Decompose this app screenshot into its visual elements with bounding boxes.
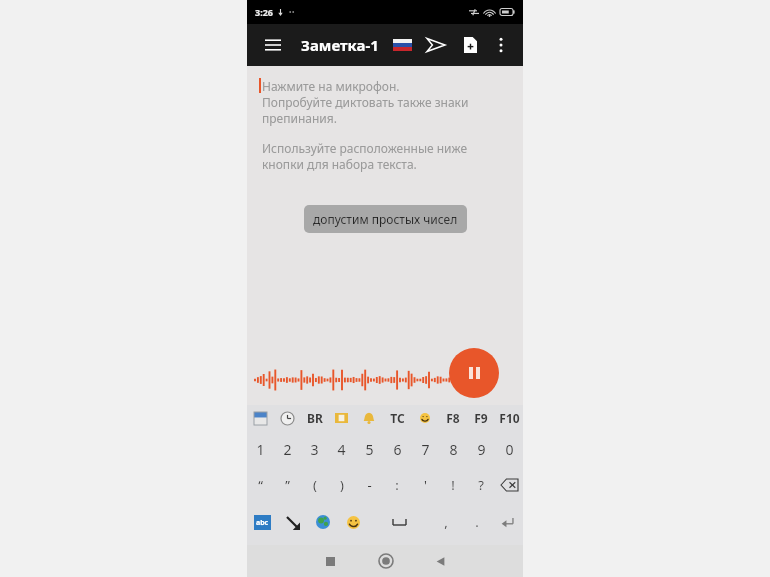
staticText: 6 [393,440,402,459]
staticText: TC [390,410,405,426]
button[interactable]: Recents [303,545,358,577]
staticText: , [444,513,448,531]
button[interactable]: допустим простых чисел [304,205,467,233]
button[interactable]: ) [328,467,355,503]
button[interactable] [328,405,355,431]
staticText: “ [258,476,263,494]
button[interactable]: Language [387,30,417,60]
staticText: 8 [449,440,458,459]
button[interactable] [338,503,369,541]
button[interactable]: 3 [301,431,328,467]
staticText: ) [340,476,344,494]
staticText: 1 [256,440,265,459]
staticText: ? [478,476,484,494]
staticText: допустим простых чисел [313,211,458,227]
staticText: F9 [474,410,488,426]
button[interactable] [274,405,301,431]
button[interactable]: F10 [495,405,523,431]
button[interactable]: Home [358,545,413,577]
button[interactable]: . [461,503,492,541]
staticText: F8 [446,410,460,426]
staticText: 5 [365,440,374,459]
button[interactable]: ! [439,467,467,503]
button[interactable]: 4 [328,431,355,467]
button[interactable] [355,405,383,431]
button[interactable]: 2 [274,431,301,467]
button[interactable]: New note [455,30,485,60]
button[interactable]: Send [421,30,451,60]
button[interactable]: “ [247,467,274,503]
button[interactable]: Pause recording [449,348,499,398]
staticText: . [475,513,479,531]
button[interactable]: 9 [467,431,495,467]
staticText: ” [285,476,290,494]
staticText: - [367,476,372,494]
button[interactable]: ' [411,467,439,503]
button[interactable] [411,405,439,431]
staticText: BR [307,410,323,426]
staticText: 4 [337,440,346,459]
button[interactable]: F8 [439,405,467,431]
staticText: ( [313,476,317,494]
button[interactable]: 1 [247,431,274,467]
button[interactable] [495,467,523,503]
staticText: Нажмите на микрофон. Попробуйте диктоват… [262,78,469,126]
button[interactable]: 0 [495,431,523,467]
button[interactable]: ? [467,467,495,503]
staticText: ! [451,476,455,494]
button[interactable]: 5 [355,431,383,467]
button[interactable]: Space [369,503,430,541]
staticText: 3:26 [255,6,273,18]
button[interactable] [307,503,338,541]
button[interactable] [492,503,523,541]
button[interactable]: ” [274,467,301,503]
button[interactable]: 6 [383,431,411,467]
button[interactable]: Menu [259,31,287,59]
staticText: 0 [505,440,514,459]
button[interactable]: abc [247,503,277,541]
button[interactable] [277,503,307,541]
button[interactable]: , [430,503,461,541]
staticText: 7 [421,440,430,459]
button[interactable]: ( [301,467,328,503]
button[interactable]: BR [301,405,328,431]
button[interactable]: F9 [467,405,495,431]
button[interactable] [247,405,274,431]
button[interactable]: TC [383,405,411,431]
button[interactable]: Back [413,545,468,577]
button[interactable]: 7 [411,431,439,467]
button[interactable]: 8 [439,431,467,467]
staticText: F10 [499,410,520,426]
button[interactable]: - [355,467,383,503]
staticText: : [395,476,399,494]
staticText: 9 [477,440,486,459]
staticText: 3 [310,440,319,459]
button[interactable]: Заметка-1 [301,35,379,55]
staticText: Используйте расположенные ниже кнопки дл… [262,140,468,172]
staticText: 2 [283,440,292,459]
staticText: ' [424,476,427,494]
button[interactable]: : [383,467,411,503]
button[interactable]: More options [487,31,515,59]
staticText: abc [256,518,269,528]
